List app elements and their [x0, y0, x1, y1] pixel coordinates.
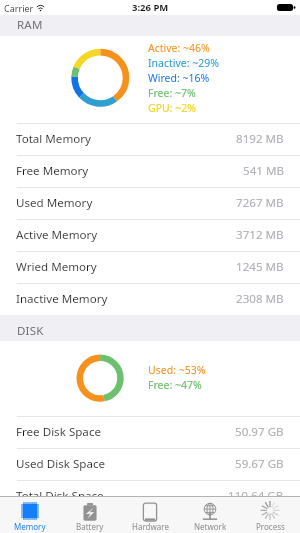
staticText: 50.97 GB: [235, 424, 284, 440]
staticText: Total Memory: [16, 131, 91, 147]
staticText: RAM: [17, 17, 43, 33]
staticText: GPU: ~2%: [148, 101, 196, 115]
staticText: 2308 MB: [236, 291, 284, 307]
button[interactable]: Hardware: [120, 497, 180, 533]
button[interactable]: Total Memory: [0, 123, 300, 155]
staticText: Inactive: ~29%: [148, 56, 220, 70]
button[interactable]: Used Memory: [0, 187, 300, 219]
staticText: Free Memory: [16, 163, 89, 179]
button[interactable]: Used Disk Space: [0, 448, 300, 480]
staticText: Free: ~47%: [148, 378, 202, 392]
staticText: Free: ~7%: [148, 86, 196, 100]
staticText: Wired: ~16%: [148, 71, 210, 85]
button[interactable]: Network: [180, 497, 240, 533]
staticText: Hardware: [132, 521, 169, 532]
staticText: Network: [194, 521, 227, 532]
staticText: 3712 MB: [236, 227, 284, 243]
staticText: Active Memory: [16, 227, 98, 243]
staticText: 541 MB: [243, 163, 284, 179]
staticText: Memory: [14, 521, 46, 532]
staticText: 1245 MB: [236, 259, 284, 275]
staticText: 110.64 GB: [228, 488, 284, 496]
staticText: Carrier: [4, 2, 34, 14]
staticText: DISK: [17, 323, 44, 339]
button[interactable]: Memory: [0, 497, 60, 533]
staticText: Used Disk Space: [16, 456, 106, 472]
staticText: Free Disk Space: [16, 424, 101, 440]
button[interactable]: Process: [240, 497, 300, 533]
button[interactable]: Total Disk Space: [0, 480, 300, 496]
staticText: Inactive Memory: [16, 291, 108, 307]
staticText: Wried Memory: [16, 259, 97, 275]
staticText: 59.67 GB: [235, 456, 284, 472]
staticText: Used: ~53%: [148, 363, 206, 377]
staticText: 7267 MB: [236, 195, 284, 211]
staticText: Total Disk Space: [16, 488, 104, 496]
staticText: Battery: [76, 521, 104, 532]
staticText: Used Memory: [16, 195, 93, 211]
button[interactable]: Wried Memory: [0, 251, 300, 283]
staticText: 3:26 PM: [132, 1, 169, 14]
staticText: Active: ~46%: [148, 41, 210, 55]
button[interactable]: Battery: [60, 497, 120, 533]
staticText: Process: [256, 521, 285, 532]
staticText: 8192 MB: [236, 131, 284, 147]
button[interactable]: Free Disk Space: [0, 416, 300, 448]
button[interactable]: Inactive Memory: [0, 283, 300, 315]
button[interactable]: Free Memory: [0, 155, 300, 187]
button[interactable]: Active Memory: [0, 219, 300, 251]
